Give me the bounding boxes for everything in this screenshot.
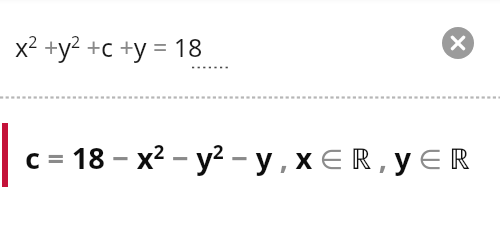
staticText: x2 +y2 +c +y = 18 bbox=[15, 30, 203, 64]
button[interactable]: Clear bbox=[442, 27, 474, 59]
button[interactable]: c = 18 − x2 − y2 − y , x ∈ ℝ , y ∈ ℝ bbox=[25, 138, 470, 177]
